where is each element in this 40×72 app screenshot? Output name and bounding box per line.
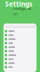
staticText: Settings bbox=[5, 0, 32, 8]
button[interactable] bbox=[3, 49, 36, 53]
button[interactable] bbox=[3, 53, 36, 57]
button[interactable] bbox=[3, 57, 36, 61]
button[interactable] bbox=[3, 61, 36, 65]
button[interactable] bbox=[3, 41, 36, 45]
button[interactable] bbox=[3, 29, 36, 33]
button[interactable] bbox=[3, 33, 36, 37]
staticText: configuration bbox=[13, 6, 32, 16]
button[interactable] bbox=[3, 65, 36, 69]
button[interactable] bbox=[3, 37, 36, 41]
button[interactable] bbox=[3, 45, 36, 49]
